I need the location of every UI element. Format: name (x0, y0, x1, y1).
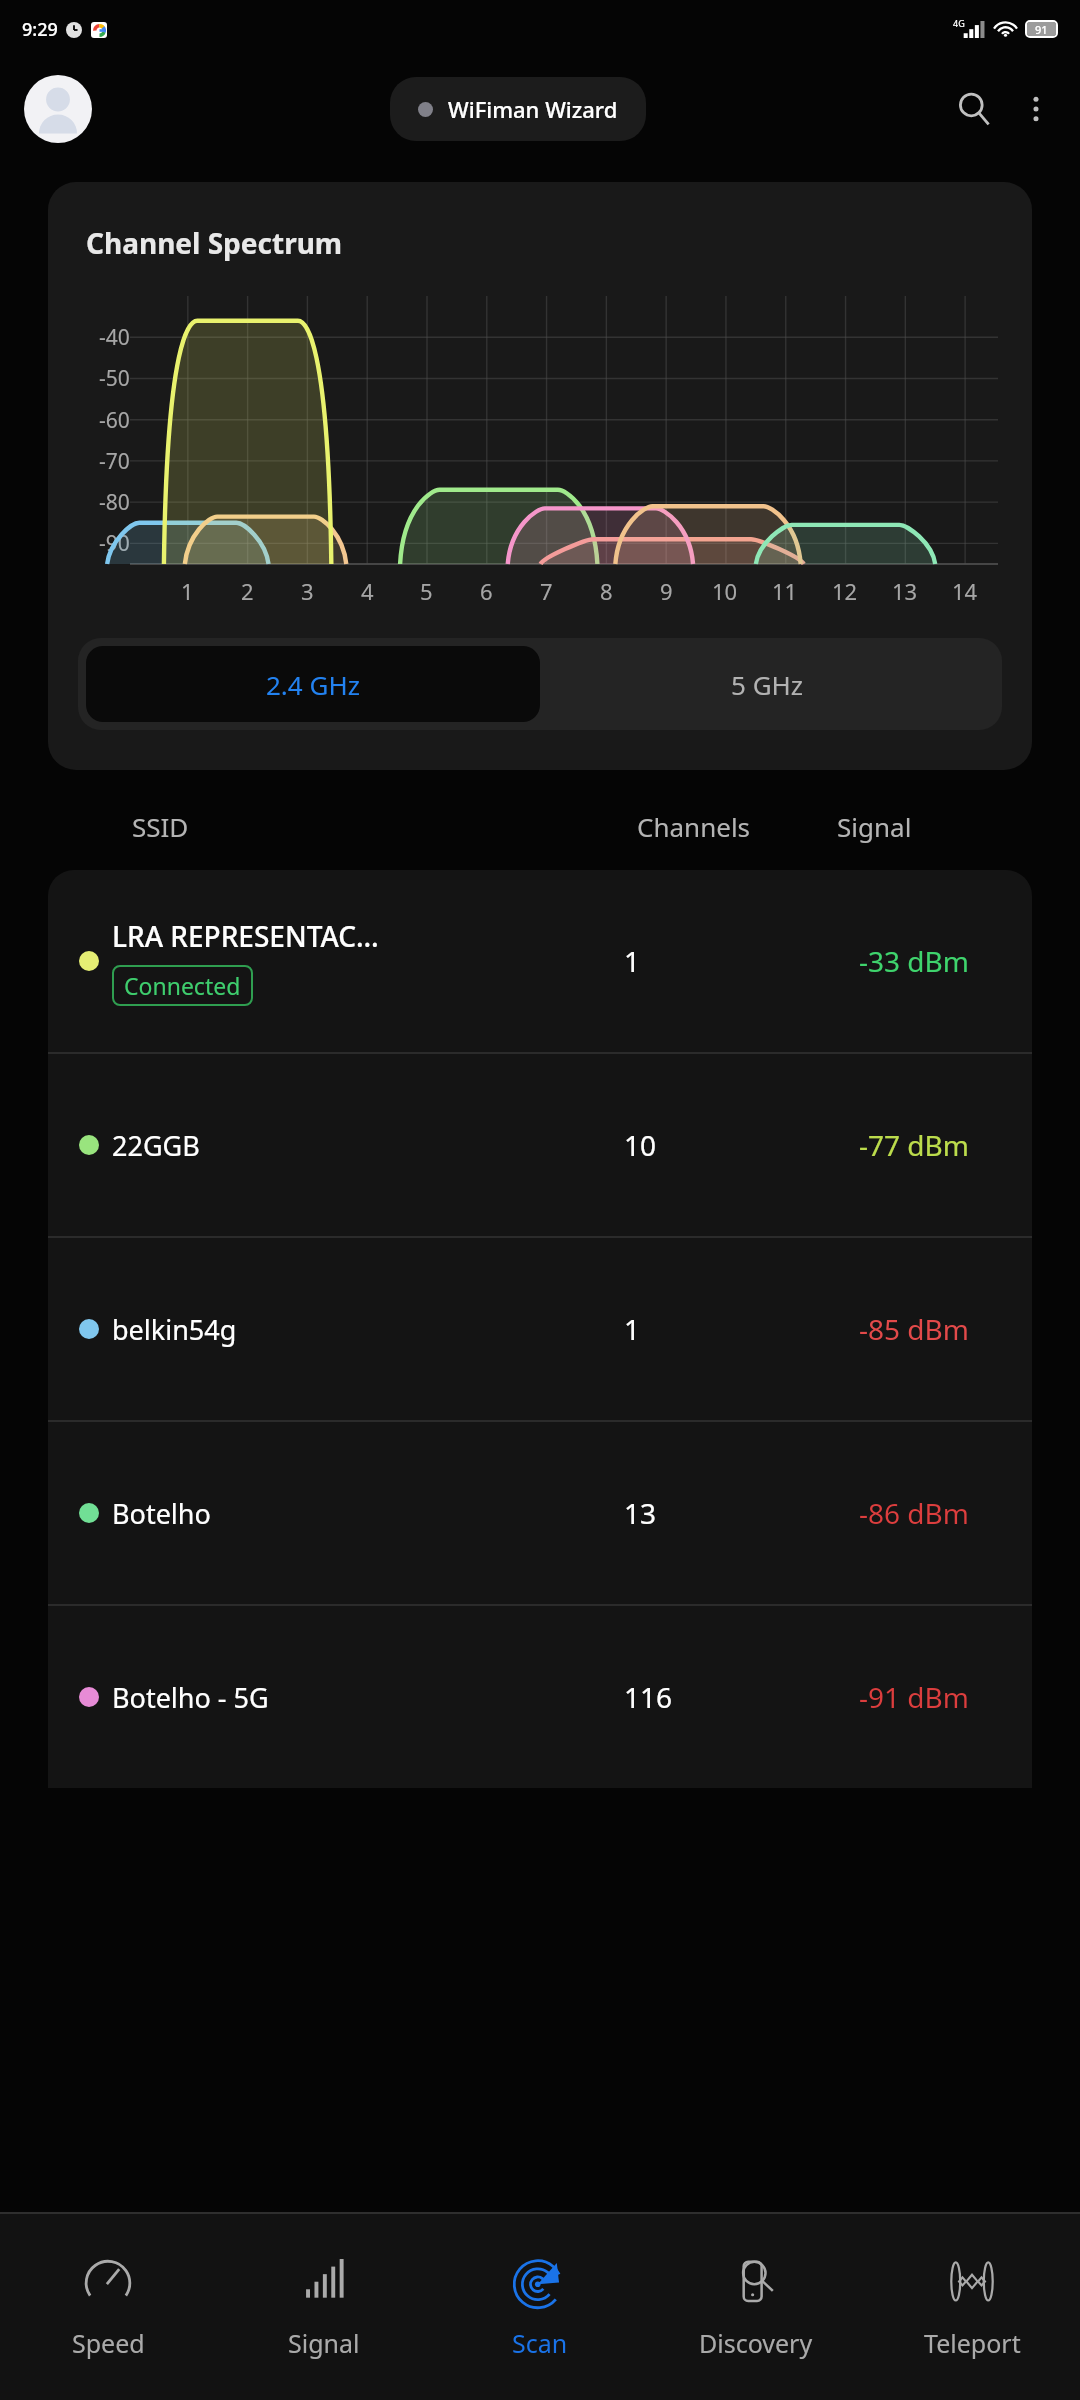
staticText: SSID (132, 809, 637, 844)
staticText: belkin54g (112, 1311, 237, 1348)
staticText: 6 (480, 576, 493, 606)
staticText: Signal (288, 2326, 360, 2360)
staticText: Discovery (699, 2326, 813, 2360)
staticText: -90 (99, 529, 130, 558)
button[interactable]: belkin54g (48, 1238, 1032, 1420)
staticText: 7 (540, 576, 553, 606)
staticText: Channel Spectrum (86, 224, 343, 262)
staticText: 14 (952, 576, 978, 606)
staticText: Channels (637, 809, 837, 844)
button[interactable]: Search (942, 77, 1006, 141)
button[interactable]: 22GGB (48, 1054, 1032, 1236)
staticText: -50 (99, 364, 130, 393)
staticText: Signal (837, 809, 1032, 844)
staticText: 9:29 (22, 17, 58, 42)
staticText: Teleport (924, 2326, 1021, 2360)
button[interactable]: Botelho - 5G (48, 1606, 1032, 1788)
button[interactable]: More options (1006, 79, 1066, 139)
staticText: 9 (660, 576, 673, 606)
staticText: 91 (1035, 22, 1048, 36)
button[interactable]: Botelho (48, 1422, 1032, 1604)
button[interactable]: 5 GHz (540, 646, 994, 722)
staticText: -85 dBm (814, 1310, 1014, 1348)
staticText: 11 (772, 576, 798, 606)
staticText: 22GGB (112, 1127, 200, 1164)
staticText: Scan (512, 2326, 568, 2360)
staticText: -86 dBm (814, 1494, 1014, 1532)
staticText: 10 (712, 576, 738, 606)
staticText: 8 (600, 576, 613, 606)
staticText: -70 (99, 447, 130, 476)
staticText: -33 dBm (814, 942, 1014, 980)
staticText: 10 (624, 1126, 814, 1164)
staticText: 5 GHz (731, 667, 804, 702)
button[interactable]: Teleport (864, 2214, 1080, 2400)
staticText: 4G (953, 17, 965, 29)
staticText: -77 dBm (814, 1126, 1014, 1164)
button[interactable]: Scan (432, 2214, 648, 2400)
staticText: 5 (420, 576, 433, 606)
staticText: 13 (892, 576, 918, 606)
staticText: 116 (624, 1678, 814, 1716)
staticText: Speed (72, 2326, 145, 2360)
staticText: Connected (124, 970, 241, 1001)
staticText: -40 (99, 323, 130, 352)
staticText: 1 (624, 942, 814, 980)
staticText: Botelho - 5G (112, 1679, 269, 1716)
button[interactable]: Discovery (648, 2214, 864, 2400)
staticText: 2 (241, 576, 254, 606)
staticText: -80 (99, 488, 130, 517)
staticText: LRA REPRESENTAC… (112, 917, 379, 955)
staticText: 13 (624, 1494, 814, 1532)
staticText: 1 (181, 576, 194, 606)
staticText: 1 (624, 1310, 814, 1348)
button[interactable]: 2.4 GHz (86, 646, 540, 722)
staticText: 4 (361, 576, 374, 606)
button[interactable]: LRA REPRESENTAC… (48, 870, 1032, 1052)
staticText: -91 dBm (814, 1678, 1014, 1716)
button[interactable]: WiFiman Wizard (390, 77, 646, 141)
staticText: -60 (99, 406, 130, 435)
staticText: 2.4 GHz (266, 667, 360, 702)
button[interactable]: Account (24, 75, 92, 143)
staticText: 12 (832, 576, 858, 606)
staticText: WiFiman Wizard (448, 94, 618, 124)
staticText: 3 (301, 576, 314, 606)
button[interactable]: Signal (216, 2214, 432, 2400)
button[interactable]: Speed (0, 2214, 216, 2400)
staticText: Botelho (112, 1495, 211, 1532)
